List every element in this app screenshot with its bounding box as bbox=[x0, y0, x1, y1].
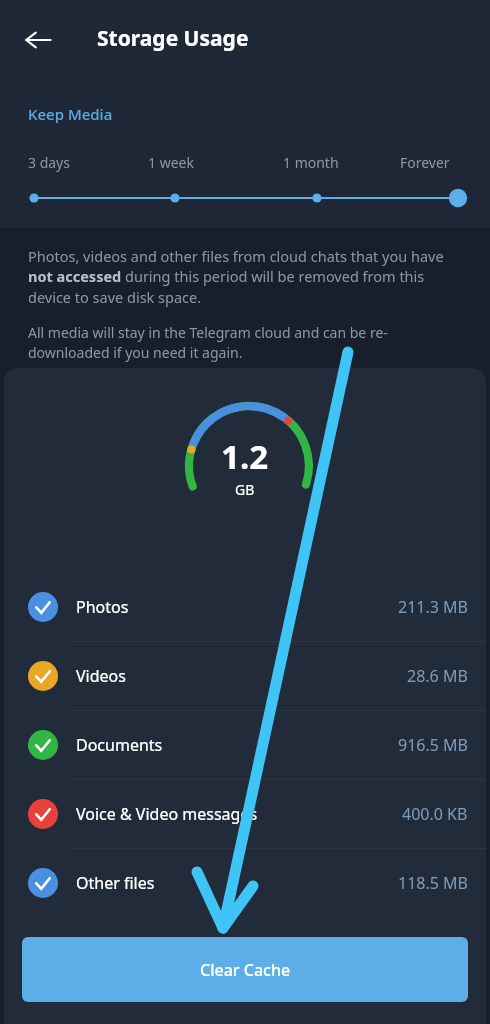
staticText: 1.2 bbox=[221, 434, 269, 479]
button[interactable]: Back bbox=[12, 20, 64, 60]
staticText: All media will stay in the Telegram clou… bbox=[28, 323, 460, 363]
staticText: 28.6 MB bbox=[407, 665, 468, 687]
staticText: 400.0 KB bbox=[402, 803, 468, 825]
button[interactable]: Videos bbox=[4, 642, 486, 710]
button[interactable]: Documents bbox=[4, 711, 486, 779]
staticText: Keep Media bbox=[28, 104, 113, 124]
staticText: 1 month bbox=[283, 153, 339, 172]
staticText: 916.5 MB bbox=[398, 734, 468, 756]
staticText: Other files bbox=[76, 872, 155, 894]
staticText: GB bbox=[235, 480, 255, 499]
button[interactable]: Keep media duration bbox=[20, 183, 470, 213]
staticText: Forever bbox=[400, 153, 450, 172]
staticText: 118.5 MB bbox=[398, 872, 468, 894]
staticText: Storage Usage bbox=[97, 24, 249, 53]
staticText: Videos bbox=[76, 665, 126, 687]
button[interactable]: Voice & Video messages bbox=[4, 780, 486, 848]
staticText: Photos, videos and other files from clou… bbox=[28, 246, 460, 308]
staticText: 1 week bbox=[148, 153, 194, 172]
staticText: Voice & Video messages bbox=[76, 803, 258, 825]
staticText: Documents bbox=[76, 734, 163, 756]
button[interactable]: Clear Cache bbox=[22, 937, 468, 1002]
staticText: Photos bbox=[76, 596, 129, 618]
button[interactable]: Photos bbox=[4, 573, 486, 641]
button[interactable]: Other files bbox=[4, 849, 486, 917]
staticText: 3 days bbox=[28, 153, 70, 172]
staticText: Clear Cache bbox=[200, 959, 291, 981]
staticText: 211.3 MB bbox=[398, 596, 468, 618]
